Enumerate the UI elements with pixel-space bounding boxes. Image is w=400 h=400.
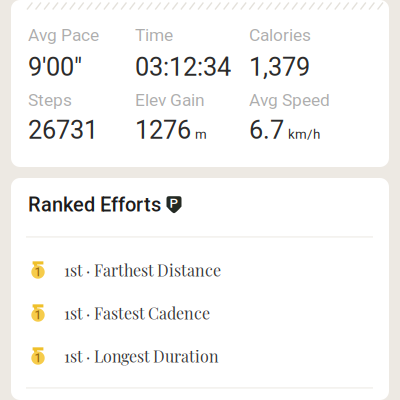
staticText: P	[169, 195, 178, 211]
staticText: 1,379	[249, 52, 310, 82]
button[interactable]: 1	[11, 291, 389, 334]
staticText: 1	[34, 351, 41, 365]
staticText: m	[195, 126, 207, 142]
staticText: Calories	[249, 25, 311, 45]
staticText: Avg Pace	[28, 25, 99, 45]
staticText: Elev Gain	[135, 90, 205, 110]
staticText: 1st · Farthest Distance	[64, 259, 221, 281]
staticText: 1	[34, 308, 41, 322]
staticText: 6.7	[249, 115, 284, 145]
staticText: Steps	[28, 90, 72, 110]
staticText: Avg Speed	[249, 90, 330, 110]
staticText: 26731	[28, 115, 98, 145]
button[interactable]: 1	[11, 248, 389, 291]
staticText: Ranked Efforts	[28, 193, 161, 216]
staticText: 1st · Longest Duration	[64, 345, 219, 367]
staticText: km/h	[288, 126, 320, 142]
button[interactable]: 1	[11, 334, 389, 377]
staticText: Time	[135, 25, 173, 45]
staticText: 9'00"	[28, 52, 82, 82]
staticText: 1st · Fastest Cadence	[64, 302, 210, 324]
staticText: 03:12:34	[135, 52, 231, 82]
staticText: 1276	[135, 115, 191, 145]
staticText: 1	[34, 265, 41, 279]
